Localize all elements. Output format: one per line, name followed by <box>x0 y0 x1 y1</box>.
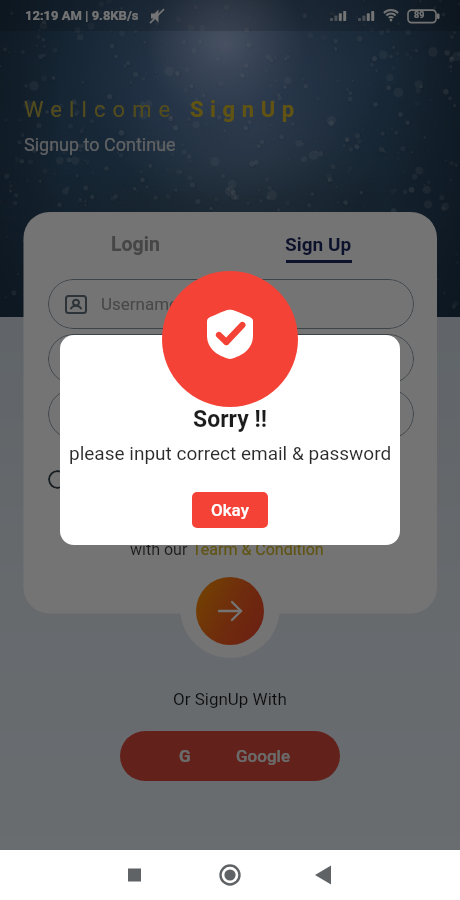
staticText: Sign Up <box>285 233 352 255</box>
staticText: Sorry !! <box>193 406 267 433</box>
staticText: Google <box>236 746 291 766</box>
staticText: Username <box>101 294 179 314</box>
staticText: with our <box>130 540 192 559</box>
button[interactable]: Continue <box>196 577 264 645</box>
button[interactable]: Agree checkbox <box>48 470 67 489</box>
staticText: SignUp <box>190 97 301 123</box>
button[interactable]: Sign Up <box>274 228 363 268</box>
staticText: 12:19 AM | 9.8KB/s <box>25 8 139 23</box>
button[interactable]: Username <box>48 279 414 329</box>
button[interactable]: Okay <box>192 492 268 528</box>
button[interactable]: G <box>120 731 340 781</box>
staticText: Wellcome <box>24 97 190 123</box>
button[interactable]: Login <box>100 228 171 261</box>
button[interactable]: Home <box>205 850 255 900</box>
staticText: Okay <box>211 500 249 520</box>
staticText: G <box>179 746 191 766</box>
button[interactable]: Email <box>48 334 414 384</box>
staticText: Signup to Continue <box>24 134 176 155</box>
button[interactable]: Password <box>48 389 414 439</box>
staticText: please input correct email & password <box>69 442 392 464</box>
staticText: Login <box>111 233 160 256</box>
staticText: 89 <box>414 10 425 21</box>
staticText: Tearm & Condition <box>192 540 324 559</box>
button[interactable]: Back <box>300 850 350 900</box>
button[interactable]: Recents <box>110 850 160 900</box>
staticText: Or SignUp With <box>173 689 287 709</box>
